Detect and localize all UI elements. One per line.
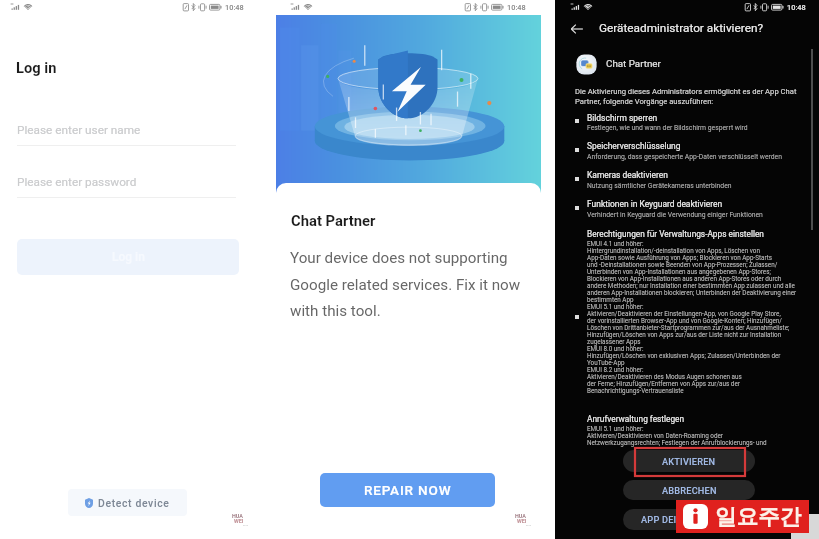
staticText: Log in: [112, 250, 145, 264]
staticText: Anrufverwaltung festlegen: [587, 414, 685, 424]
staticText: ....: [243, 522, 248, 527]
staticText: WEI: [234, 518, 244, 524]
staticText: Berechtigungen für Verwaltungs-Apps eins…: [587, 229, 764, 239]
staticText: Please enter password: [17, 175, 137, 189]
staticText: 10:48: [507, 3, 526, 12]
button[interactable]: APP DEINSTALLIEREN: [623, 509, 755, 530]
staticText: Chat Partner: [291, 212, 376, 229]
staticText: ABBRECHEN: [662, 485, 717, 496]
staticText: Please enter user name: [17, 123, 141, 137]
staticText: Festlegen, wie und wann der Bildschirm g…: [587, 124, 748, 132]
staticText: HUA: [515, 513, 526, 519]
button[interactable]: [569, 111, 805, 137]
button[interactable]: Back: [569, 21, 585, 37]
button[interactable]: [569, 168, 805, 194]
staticText: Anforderung, dass gespeicherte App-Daten…: [587, 153, 782, 161]
staticText: Log in: [16, 59, 57, 76]
staticText: EMUI 4.1 und höher: Hintergrundinstallat…: [587, 240, 811, 394]
staticText: Verhindert in Keyguard die Verwendung ei…: [587, 211, 763, 219]
staticText: Geräteadministrator aktivieren?: [599, 21, 763, 35]
staticText: APP DEINSTALLIEREN: [641, 514, 737, 525]
staticText: Detect device: [98, 497, 170, 509]
staticText: HUA: [232, 513, 243, 519]
staticText: EMUI 5.1 und höher: Aktivieren/Deaktivie…: [587, 425, 811, 446]
staticText: Speicherverschlüsselung: [587, 141, 681, 151]
staticText: Nutzung sämtlicher Gerätekameras unterbi…: [587, 182, 732, 190]
staticText: Chat Partner: [606, 58, 661, 69]
staticText: REPAIR NOW: [364, 482, 452, 498]
staticText: 10:48: [787, 3, 806, 12]
staticText: Bildschirm sperren: [587, 113, 658, 123]
button[interactable]: ABBRECHEN: [623, 480, 755, 500]
button[interactable]: [569, 139, 805, 165]
button[interactable]: Detect device: [68, 489, 187, 516]
button[interactable]: [569, 197, 805, 223]
staticText: 10:48: [225, 3, 244, 12]
staticText: Kameras deaktivieren: [587, 170, 668, 180]
staticText: 일요주간: [715, 503, 801, 530]
staticText: Your device does not supporting Google r…: [290, 249, 522, 319]
staticText: Funktionen in Keyguard deaktivieren: [587, 199, 723, 209]
staticText: ....: [526, 522, 531, 527]
button[interactable]: AKTIVIEREN: [623, 450, 755, 472]
button[interactable]: REPAIR NOW: [320, 473, 495, 507]
staticText: WEI: [517, 518, 527, 524]
staticText: Die Aktivierung dieses Administrators er…: [575, 87, 797, 106]
staticText: AKTIVIEREN: [662, 456, 716, 467]
